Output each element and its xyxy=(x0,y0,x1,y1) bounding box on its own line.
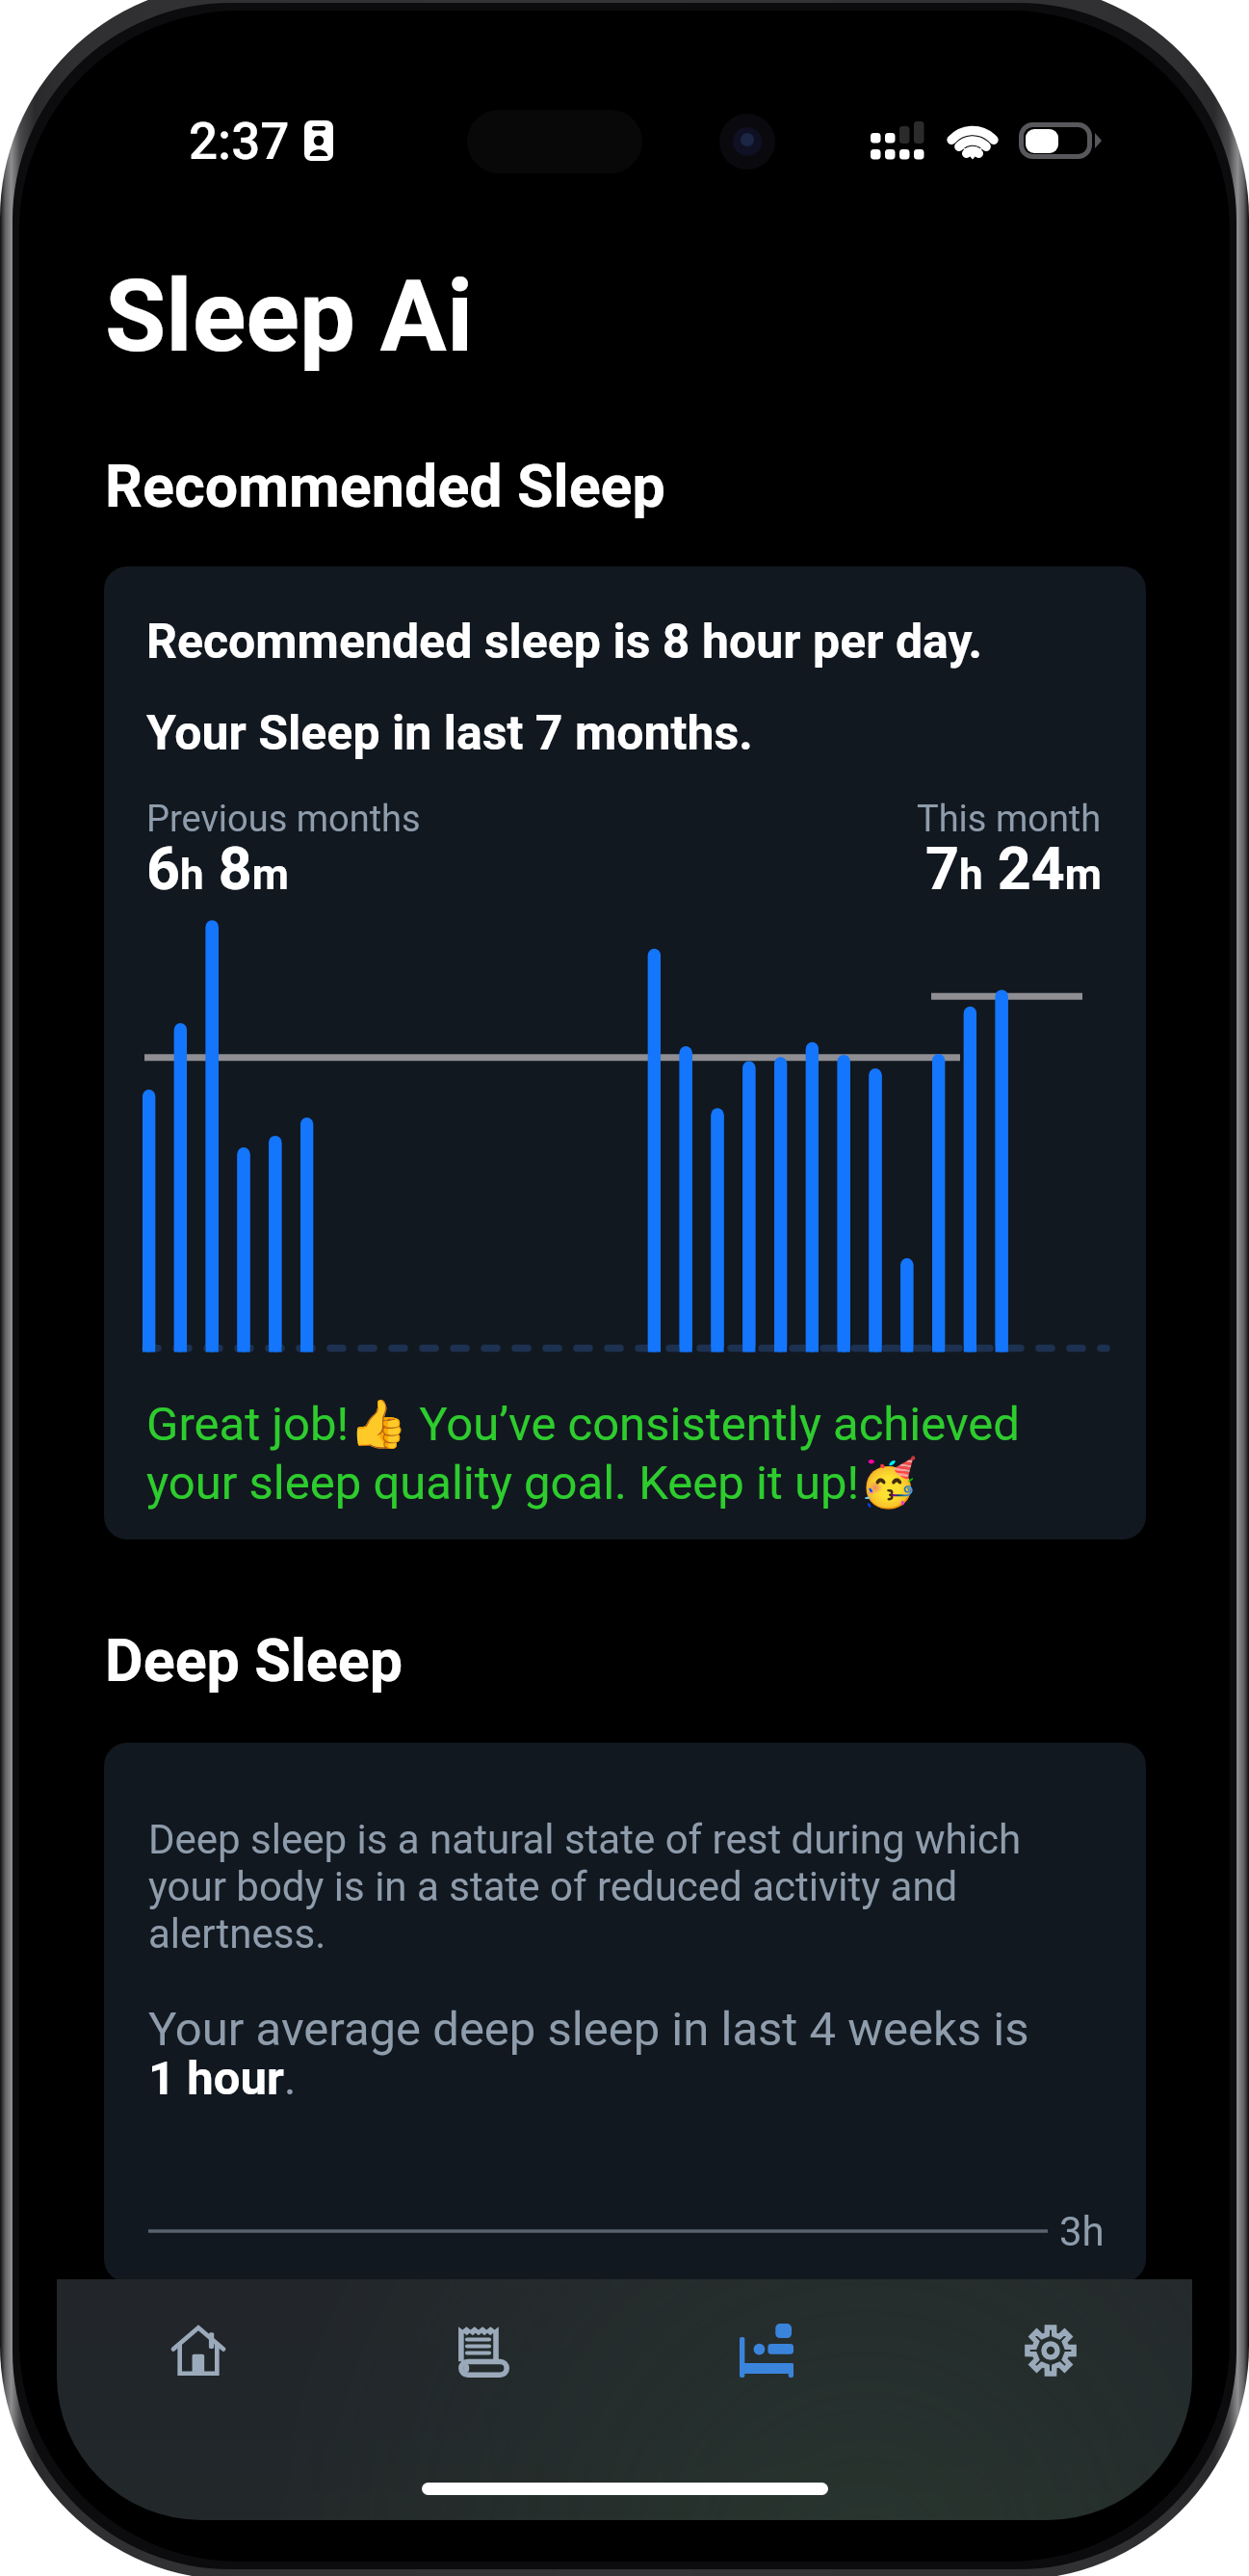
button[interactable]: Deep sleep is a natural state of rest du… xyxy=(104,1743,1146,2282)
staticText: Sleep Ai xyxy=(105,258,474,375)
button[interactable]: Recommended sleep is 8 hour per day. xyxy=(104,566,1146,1539)
button[interactable]: Home xyxy=(57,2279,340,2422)
staticText: This month xyxy=(917,798,1102,841)
staticText: Recommended Sleep xyxy=(105,452,665,520)
staticText: Recommended sleep is 8 hour per day. xyxy=(146,614,983,670)
button[interactable]: Settings xyxy=(908,2279,1192,2422)
button[interactable]: Sleep xyxy=(624,2279,908,2422)
staticText: Deep sleep is a natural state of rest du… xyxy=(148,1816,1044,1958)
staticText: 6h 8m xyxy=(146,834,289,903)
staticText: Previous months xyxy=(146,798,421,841)
staticText: 2:37 xyxy=(189,112,290,171)
staticText: Great job!👍 You’ve consistently achieved… xyxy=(146,1397,1100,1511)
staticText: Deep Sleep xyxy=(105,1626,403,1695)
staticText: Your average deep sleep in last 4 weeks … xyxy=(148,2002,1054,2106)
staticText: 3h xyxy=(1059,2208,1105,2255)
staticText: Your Sleep in last 7 months. xyxy=(146,705,753,762)
button[interactable]: Reports xyxy=(340,2279,624,2422)
staticText: 7h 24m xyxy=(925,834,1102,903)
